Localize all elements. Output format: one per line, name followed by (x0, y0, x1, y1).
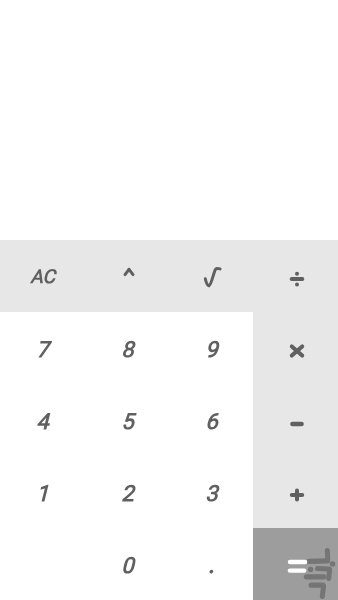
staticText: AC (30, 264, 55, 294)
staticText: . (208, 550, 214, 584)
button[interactable]: 0 (85, 528, 169, 600)
staticText: 6 (205, 406, 218, 440)
button[interactable]: 9 (169, 312, 253, 384)
button[interactable]: 8 (85, 312, 169, 384)
button[interactable]: Minus (253, 384, 338, 456)
staticText: 2 (121, 478, 134, 512)
staticText: 5 (121, 406, 134, 440)
staticText: 4 (36, 406, 49, 440)
button[interactable]: All clear (0, 240, 84, 312)
button[interactable]: 5 (85, 384, 169, 456)
button[interactable]: Divide (253, 240, 338, 312)
staticText: 8 (121, 334, 134, 368)
button[interactable]: Equals (253, 528, 338, 600)
staticText: 0 (121, 550, 134, 584)
button[interactable]: 7 (0, 312, 85, 384)
staticText: 3 (205, 478, 218, 512)
button[interactable]: Multiply (253, 312, 338, 384)
button[interactable]: 1 (0, 456, 85, 528)
staticText: 7 (36, 334, 49, 368)
button[interactable]: 6 (169, 384, 253, 456)
button[interactable]: Plus (253, 456, 338, 528)
button[interactable]: Square root (168, 240, 253, 312)
button[interactable]: 2 (85, 456, 169, 528)
button[interactable]: Power (84, 240, 168, 312)
button[interactable]: 3 (169, 456, 253, 528)
button[interactable]: 4 (0, 384, 85, 456)
staticText: 9 (205, 334, 218, 368)
button[interactable]: . (169, 528, 253, 600)
staticText: 1 (36, 478, 49, 512)
